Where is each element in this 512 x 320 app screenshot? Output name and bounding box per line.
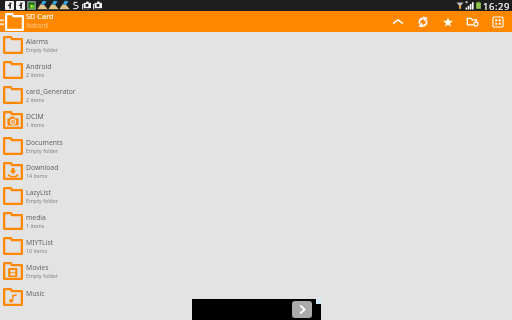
button[interactable]: Favorites xyxy=(435,11,460,32)
staticText: 16:29 xyxy=(483,0,511,11)
staticText: Empty folder xyxy=(26,272,58,279)
button[interactable]: Music xyxy=(0,284,512,309)
staticText: Documents xyxy=(26,138,63,147)
staticText: /sdcard xyxy=(26,21,48,29)
staticText: MIYTList xyxy=(26,238,54,247)
staticText: card_Generator xyxy=(26,87,76,96)
button[interactable]: media xyxy=(0,208,512,233)
button[interactable]: Advertisement xyxy=(192,299,321,320)
button[interactable]: New folder xyxy=(460,11,485,32)
button[interactable]: More options xyxy=(485,11,510,32)
staticText: Android xyxy=(26,62,52,71)
staticText: Empty folder xyxy=(26,197,58,204)
staticText: 1 items xyxy=(26,121,45,128)
button[interactable]: MIYTList xyxy=(0,233,512,258)
button[interactable]: Android xyxy=(0,57,512,82)
button[interactable]: card_Generator xyxy=(0,82,512,107)
staticText: Alarms xyxy=(26,37,49,46)
staticText: DCIM xyxy=(26,112,44,121)
staticText: LazyList xyxy=(26,188,52,197)
staticText: 2 items xyxy=(26,96,45,103)
button[interactable]: Movies xyxy=(0,258,512,283)
button[interactable]: Refresh xyxy=(410,11,435,32)
staticText: media xyxy=(26,213,46,222)
staticText: Movies xyxy=(26,263,49,272)
button[interactable]: Up one level xyxy=(385,11,410,32)
staticText: Download xyxy=(26,163,59,172)
staticText: Music xyxy=(26,289,45,298)
button[interactable]: Next xyxy=(292,301,312,318)
staticText: Empty folder xyxy=(26,46,58,53)
button[interactable]: Download xyxy=(0,158,512,183)
button[interactable]: LazyList xyxy=(0,183,512,208)
button[interactable]: Alarms xyxy=(0,32,512,57)
button[interactable]: Documents xyxy=(0,133,512,158)
staticText: 1 items xyxy=(26,222,45,229)
staticText: 2 items xyxy=(26,71,45,78)
staticText: 14 items xyxy=(26,172,48,179)
button[interactable]: DCIM xyxy=(0,107,512,132)
staticText: SD Card xyxy=(26,11,54,21)
staticText: 10 items xyxy=(26,247,48,254)
staticText: Empty folder xyxy=(26,147,58,154)
